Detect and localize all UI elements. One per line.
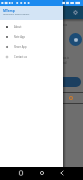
button[interactable] [20,77,81,87]
staticText: 9x7bz@mailbox.io [47,56,70,60]
button[interactable]: Settings [72,9,79,16]
button[interactable]: Recents [15,167,27,180]
staticText: Your temp inbox [47,23,68,27]
staticText: MTemp [3,9,15,13]
staticText: Share App [14,45,27,49]
button[interactable]: Inbox [69,33,82,46]
button[interactable]: Contact us [0,52,63,62]
staticText: Contact us [14,55,27,59]
button[interactable]: Rate App [0,32,63,42]
button[interactable]: Back [56,167,68,180]
staticText: Temporary Email/Address [3,13,30,16]
button[interactable]: Home [36,167,48,180]
staticText: About [14,25,22,29]
button[interactable]: Share App [0,42,63,52]
button[interactable] [0,92,83,103]
button[interactable]: About [0,22,63,32]
staticText: Tap to copy mail [47,61,67,65]
staticText: Rate App [14,35,25,39]
